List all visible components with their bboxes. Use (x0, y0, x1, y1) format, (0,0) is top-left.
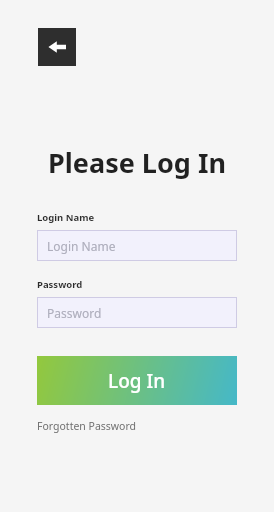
staticText: Login Name (37, 211, 95, 224)
button[interactable]: Back (38, 28, 76, 66)
button[interactable]: Log In (37, 356, 237, 405)
button[interactable]: Login Name (37, 230, 237, 261)
staticText: Password (37, 278, 83, 291)
staticText: Password (47, 305, 102, 321)
button[interactable]: Password (37, 297, 237, 328)
staticText: Login Name (47, 238, 116, 254)
staticText: Forgotten Password (37, 419, 137, 433)
button[interactable]: Forgotten Password (37, 419, 137, 433)
staticText: Please Log In (0, 144, 274, 181)
staticText: Log In (108, 368, 166, 394)
